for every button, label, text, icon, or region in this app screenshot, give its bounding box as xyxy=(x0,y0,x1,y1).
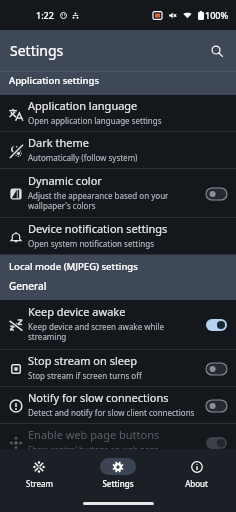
staticText: Show control buttons on web page xyxy=(28,444,159,455)
staticText: About xyxy=(185,478,208,489)
staticText: 1:22 xyxy=(36,9,54,21)
button[interactable]: Dark theme xyxy=(0,132,236,169)
staticText: Automatically (follow system) xyxy=(28,152,138,163)
button[interactable]: Stop stream on sleep xyxy=(0,350,236,387)
staticText: Local mode (MJPEG) settings xyxy=(9,260,138,273)
staticText: Device notification settings xyxy=(28,221,168,236)
staticText: Settings xyxy=(10,41,64,60)
staticText: Stop stream on sleep xyxy=(28,353,137,368)
staticText: Dark theme xyxy=(28,135,89,150)
staticText: Settings xyxy=(102,478,134,489)
staticText: Open system notification settings xyxy=(28,238,154,249)
staticText: Adjust the appearance based on your wall… xyxy=(28,190,169,211)
button[interactable]: Settings xyxy=(78,449,157,512)
staticText: Keep device awake xyxy=(28,304,126,319)
button[interactable]: Dynamic color xyxy=(0,169,236,218)
button[interactable]: Application language xyxy=(0,95,236,132)
button[interactable]: Stream xyxy=(0,449,78,512)
staticText: Application settings xyxy=(9,74,100,87)
button[interactable]: Device notification settings xyxy=(0,218,236,255)
staticText: Stream xyxy=(26,478,53,489)
staticText: Keep device and screen awake while strea… xyxy=(28,321,165,342)
button[interactable]: Keep device awake xyxy=(0,300,236,350)
staticText: Dynamic color xyxy=(28,173,102,188)
button[interactable]: Notify for slow connections xyxy=(0,387,236,424)
staticText: 100% xyxy=(205,9,229,21)
staticText: Enable web page buttons xyxy=(28,427,160,442)
button[interactable]: About xyxy=(157,449,236,512)
button[interactable]: Enable web page buttons xyxy=(0,424,236,461)
staticText: Stop stream if screen turns off xyxy=(28,370,142,381)
staticText: Open application language settings xyxy=(28,115,162,126)
staticText: Detect and notify for slow client connec… xyxy=(28,407,195,418)
button[interactable]: Search xyxy=(206,40,228,62)
staticText: Notify for slow connections xyxy=(28,390,169,405)
staticText: Application language xyxy=(28,98,138,113)
staticText: General xyxy=(9,279,47,293)
